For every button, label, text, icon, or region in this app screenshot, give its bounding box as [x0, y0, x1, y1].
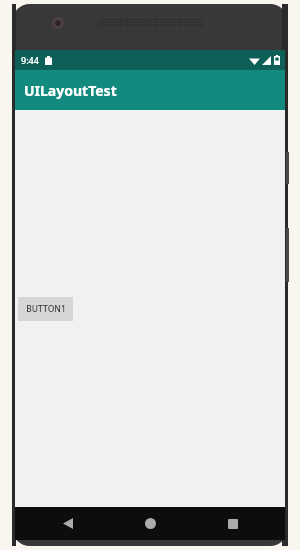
button[interactable]: BUTTON1 — [18, 297, 73, 321]
button[interactable]: Home — [120, 507, 180, 540]
staticText: UILayoutTest — [24, 81, 117, 100]
button[interactable]: Back — [38, 507, 98, 540]
staticText: 9:44 — [21, 54, 39, 66]
staticText: BUTTON1 — [26, 303, 66, 315]
button[interactable]: Recent apps — [203, 507, 263, 540]
